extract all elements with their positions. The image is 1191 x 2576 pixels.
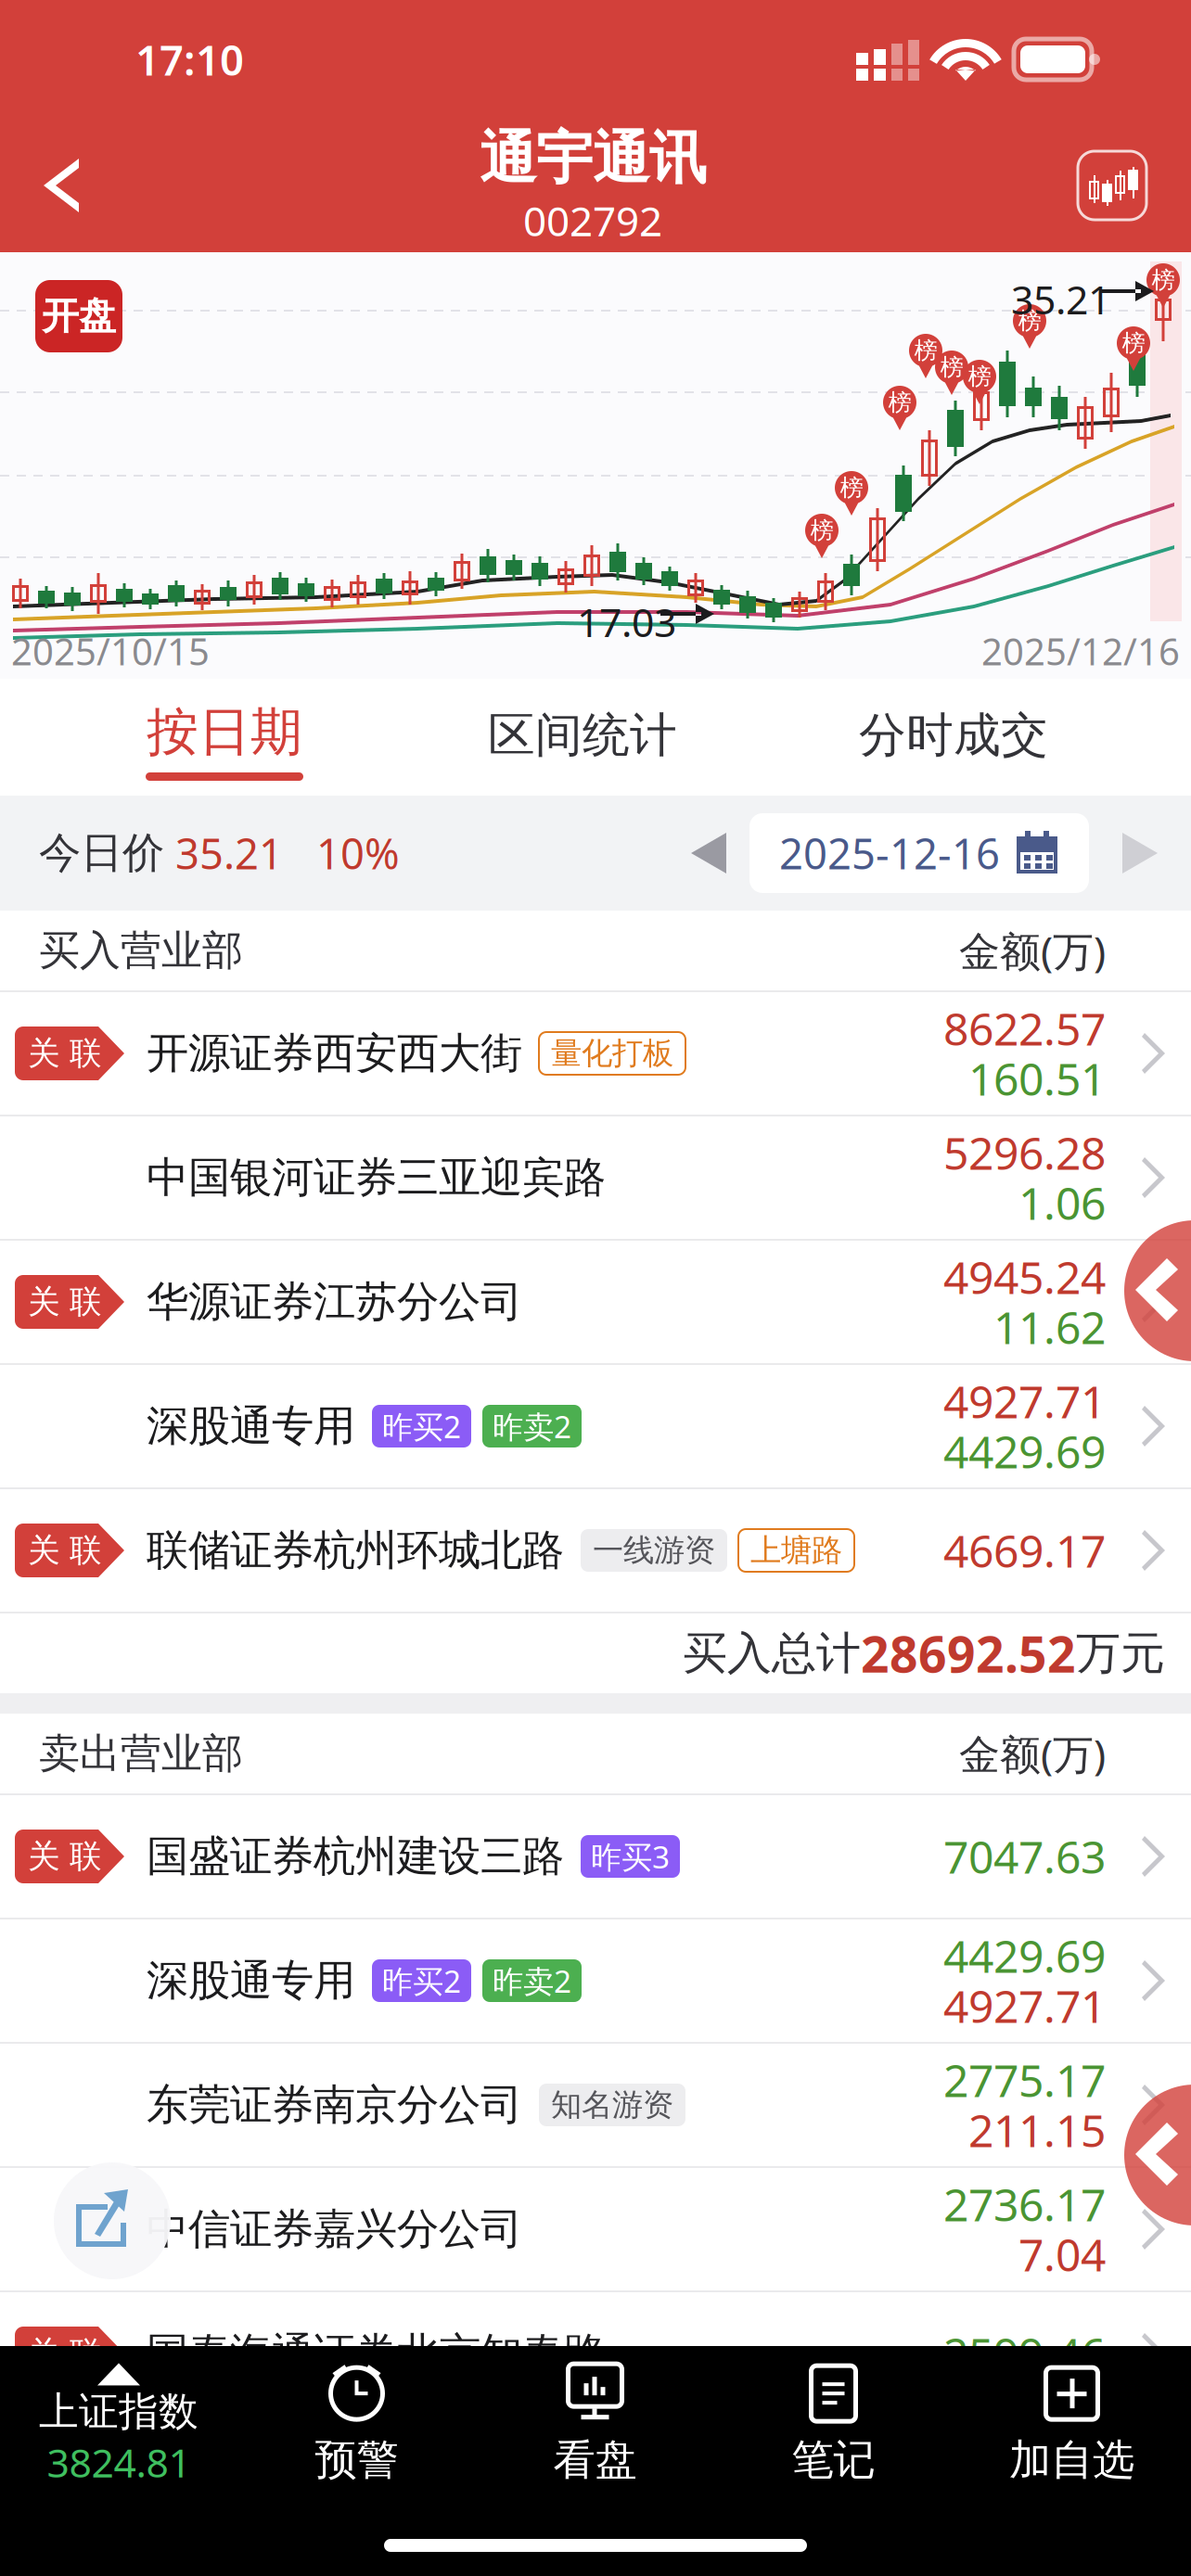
button[interactable]: 加自选 bbox=[953, 2346, 1191, 2504]
staticText: 28692.52 bbox=[861, 1621, 1076, 1686]
staticText: 2025/10/15 bbox=[11, 626, 210, 676]
button[interactable]: 上证指数 bbox=[0, 2346, 237, 2504]
staticText: 榜 bbox=[1018, 306, 1041, 335]
staticText: 2025-12-16 bbox=[779, 825, 1000, 881]
staticText: 加自选 bbox=[1009, 2434, 1134, 2486]
button[interactable]: 预警 bbox=[237, 2346, 476, 2504]
button[interactable]: K-line chart bbox=[1078, 119, 1191, 252]
staticText: 今日价 bbox=[39, 827, 164, 879]
staticText: 1.06 bbox=[1018, 1173, 1106, 1232]
button[interactable]: 中国银河证券三亚迎宾路 bbox=[0, 1116, 1191, 1239]
staticText: 榜 bbox=[1152, 266, 1175, 294]
staticText: 211.15 bbox=[968, 2100, 1106, 2159]
staticText: 昨卖2 bbox=[493, 1960, 571, 2001]
button[interactable]: 深股通专用 bbox=[0, 1919, 1191, 2042]
staticText: 开源证券西安西大街 bbox=[147, 1028, 522, 1079]
staticText: 买入营业部 bbox=[39, 925, 243, 976]
staticText: 卖出营业部 bbox=[39, 1728, 243, 1779]
staticText: 7047.63 bbox=[943, 1827, 1106, 1886]
staticText: 关 联 bbox=[28, 1531, 102, 1570]
staticText: 10% bbox=[283, 825, 400, 881]
staticText: 华源证券江苏分公司 bbox=[147, 1276, 522, 1328]
staticText: 关 联 bbox=[28, 1282, 102, 1322]
staticText: 4669.17 bbox=[943, 1521, 1106, 1580]
staticText: 160.51 bbox=[968, 1049, 1106, 1108]
button[interactable]: Share bbox=[54, 2162, 171, 2279]
staticText: 国泰海通证券北京知春路 bbox=[147, 2328, 606, 2379]
staticText: 3824.81 bbox=[47, 2436, 191, 2488]
button[interactable]: 中信证券嘉兴分公司 bbox=[0, 2168, 1191, 2290]
staticText: 昨买2 bbox=[382, 1406, 461, 1447]
staticText: 17:10 bbox=[135, 31, 244, 87]
button[interactable]: 区间统计 bbox=[449, 679, 716, 796]
staticText: 2775.17 bbox=[943, 2050, 1106, 2109]
button[interactable]: 笔记 bbox=[714, 2346, 953, 2504]
staticText: 榜 bbox=[1122, 329, 1145, 357]
staticText: 深股通专用 bbox=[147, 1955, 355, 2007]
staticText: 量化打板 bbox=[551, 1034, 673, 1072]
button[interactable]: 深股通专用 bbox=[0, 1365, 1191, 1487]
staticText: 35.21 bbox=[1011, 273, 1110, 325]
button[interactable]: 看盘 bbox=[476, 2346, 714, 2504]
button[interactable]: 分时成交 bbox=[716, 679, 1191, 796]
button[interactable]: 关 联 bbox=[0, 1489, 1191, 1612]
staticText: 4429.69 bbox=[943, 1926, 1106, 1985]
staticText: 2736.17 bbox=[943, 2175, 1106, 2234]
staticText: 17.03 bbox=[577, 595, 676, 648]
staticText: 上塘路 bbox=[750, 1531, 842, 1569]
staticText: 榜 bbox=[888, 388, 911, 417]
button[interactable]: Back bbox=[0, 119, 130, 252]
staticText: 国盛证券杭州建设三路 bbox=[147, 1831, 564, 1882]
staticText: 关 联 bbox=[28, 1837, 102, 1876]
staticText: 买入总计 bbox=[683, 1626, 861, 1681]
staticText: 7.04 bbox=[1018, 2225, 1106, 2284]
staticText: 笔记 bbox=[792, 2434, 875, 2486]
staticText: 11.62 bbox=[993, 1297, 1106, 1356]
staticText: 中信证券嘉兴分公司 bbox=[147, 2203, 522, 2255]
staticText: 2025/12/16 bbox=[981, 626, 1180, 676]
button[interactable]: 关 联 bbox=[0, 1241, 1191, 1363]
button[interactable]: 关 联 bbox=[0, 1795, 1191, 1918]
staticText: 4927.71 bbox=[943, 1976, 1106, 2035]
staticText: 35.21 bbox=[164, 825, 283, 881]
staticText: 金额(万) bbox=[959, 923, 1106, 978]
staticText: 分时成交 bbox=[859, 706, 1048, 764]
staticText: 榜 bbox=[968, 362, 991, 391]
staticText: 知名游资 bbox=[551, 2086, 673, 2124]
button[interactable]: Back bbox=[1124, 1220, 1191, 1361]
staticText: 看盘 bbox=[553, 2434, 637, 2486]
staticText: 昨买2 bbox=[382, 1960, 461, 2001]
staticText: 榜 bbox=[810, 516, 833, 545]
button[interactable]: 关 联 bbox=[0, 992, 1191, 1115]
staticText: 002792 bbox=[523, 193, 662, 247]
staticText: 万元 bbox=[1076, 1626, 1165, 1681]
staticText: 预警 bbox=[315, 2434, 398, 2486]
staticText: 2599.46 bbox=[943, 2324, 1106, 2383]
staticText: 关 联 bbox=[28, 2334, 102, 2373]
staticText: 深股通专用 bbox=[147, 1400, 355, 1452]
button[interactable]: 关 联 bbox=[0, 2292, 1191, 2415]
staticText: 中国银河证券三亚迎宾路 bbox=[147, 1152, 606, 1204]
staticText: 昨卖2 bbox=[493, 1406, 571, 1447]
staticText: 榜 bbox=[914, 336, 937, 365]
staticText: 通宇通讯 bbox=[480, 123, 706, 193]
staticText: 4945.24 bbox=[943, 1247, 1106, 1306]
button[interactable]: Previous day bbox=[668, 796, 749, 911]
button[interactable]: 按日期 bbox=[0, 679, 449, 796]
staticText: 金额(万) bbox=[959, 1726, 1106, 1781]
staticText: 上证指数 bbox=[39, 2387, 198, 2436]
button[interactable]: Back bbox=[1124, 2085, 1191, 2225]
staticText: 东莞证券南京分公司 bbox=[147, 2079, 522, 2131]
staticText: 一线游资 bbox=[593, 1531, 715, 1569]
button[interactable]: Next day bbox=[1089, 796, 1191, 911]
staticText: 区间统计 bbox=[488, 706, 677, 764]
staticText: 联储证券杭州环城北路 bbox=[147, 1525, 564, 1576]
button[interactable]: 2025-12-16 bbox=[749, 813, 1089, 893]
staticText: 榜 bbox=[840, 473, 863, 502]
staticText: 昨买3 bbox=[591, 1836, 670, 1877]
staticText: 5296.28 bbox=[943, 1123, 1106, 1182]
staticText: 关 联 bbox=[28, 1034, 102, 1073]
button[interactable]: 东莞证券南京分公司 bbox=[0, 2044, 1191, 2166]
staticText: 4429.69 bbox=[943, 1422, 1106, 1481]
staticText: 按日期 bbox=[147, 700, 302, 764]
